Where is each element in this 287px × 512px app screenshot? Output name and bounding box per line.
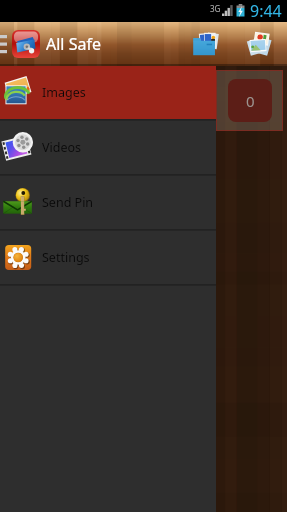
button[interactable]: 0 [216,70,283,131]
staticText: Videos [42,139,82,156]
staticText: All Safe [46,33,101,55]
button[interactable]: Videos [0,121,216,174]
button[interactable]: Send Pin [0,176,216,229]
button[interactable]: Photos [231,22,287,66]
button[interactable]: Folders [180,22,231,66]
staticText: Settings [42,249,90,266]
staticText: 0 [246,91,255,111]
staticText: Send Pin [42,194,94,211]
staticText: 9:44 [250,0,282,22]
button[interactable]: Open navigation drawer [0,22,101,66]
staticText: 3G [210,3,221,14]
button[interactable]: Settings [0,231,216,284]
button[interactable]: Images [0,66,216,119]
staticText: Images [42,84,86,101]
